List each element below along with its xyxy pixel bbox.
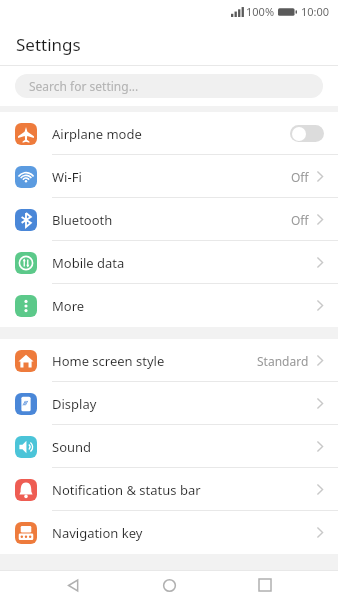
button[interactable]: Mobile data (0, 241, 338, 284)
button[interactable]: More (0, 284, 338, 327)
staticText: 10:00 (301, 4, 330, 19)
button[interactable]: Notification & status bar (0, 468, 338, 511)
staticText: Sound (52, 438, 316, 456)
staticText: Search for setting... (29, 78, 139, 94)
staticText: Navigation key (52, 524, 316, 542)
staticText: Wi-Fi (52, 168, 291, 186)
staticText: Home screen style (52, 352, 257, 370)
button[interactable]: Wi-Fi (0, 155, 338, 198)
button[interactable]: Home screen style (0, 339, 338, 382)
staticText: Notification & status bar (52, 481, 316, 499)
button[interactable]: Bluetooth (0, 198, 338, 241)
button[interactable]: Navigation key (0, 511, 338, 554)
button[interactable]: Sound (0, 425, 338, 468)
button[interactable]: Airplane mode toggle (290, 125, 324, 142)
button[interactable]: Home (146, 570, 192, 600)
button[interactable]: Airplane mode (0, 112, 338, 155)
staticText: Standard (257, 353, 309, 369)
staticText: Off (291, 169, 309, 185)
staticText: Display (52, 395, 316, 413)
button[interactable]: Recent apps (242, 570, 288, 600)
staticText: Bluetooth (52, 211, 291, 229)
button[interactable]: Search for setting... (15, 74, 323, 98)
staticText: 100% (246, 4, 275, 19)
staticText: Off (291, 212, 309, 228)
button[interactable]: Back (50, 570, 96, 600)
staticText: More (52, 297, 316, 315)
staticText: Settings (16, 33, 81, 56)
staticText: Airplane mode (52, 125, 290, 143)
button[interactable]: Display (0, 382, 338, 425)
staticText: Mobile data (52, 254, 316, 272)
